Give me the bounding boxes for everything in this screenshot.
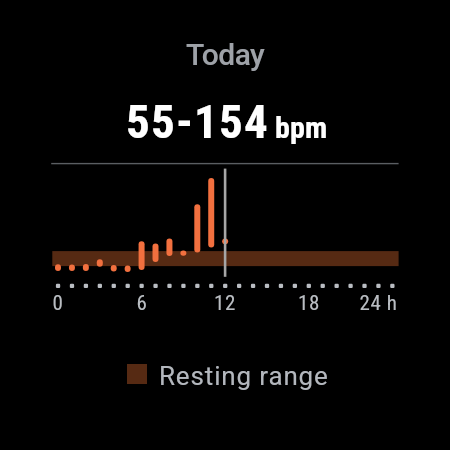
staticText: 18 <box>269 291 349 316</box>
staticText: Today <box>186 37 265 72</box>
staticText: bpm <box>275 110 328 145</box>
staticText: Resting range <box>159 361 329 391</box>
staticText: 24 h <box>359 291 398 316</box>
staticText: 0 <box>18 291 98 316</box>
other: Heart rate chart for today <box>0 0 450 450</box>
staticText: 12 <box>185 291 265 316</box>
button[interactable]: Resting range <box>127 359 329 389</box>
staticText: 55-154 <box>126 94 269 149</box>
staticText: 6 <box>102 291 182 316</box>
